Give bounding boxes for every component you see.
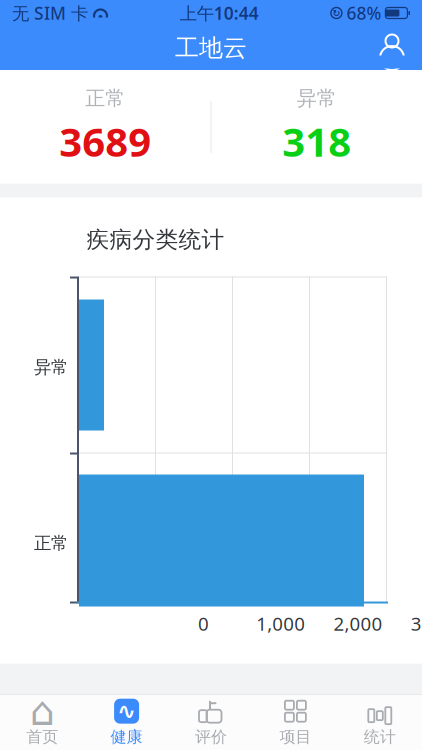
staticText: 318 — [282, 115, 351, 168]
button[interactable]: 个人中心 — [370, 26, 414, 70]
button[interactable]: ∿ — [84, 692, 169, 750]
staticText: ∿ — [117, 698, 136, 724]
staticText: 1,000 — [256, 611, 305, 636]
staticText: 评价 — [195, 727, 227, 747]
staticText: 上午10:44 — [180, 1, 259, 24]
staticText: 3,000 — [411, 611, 422, 636]
staticText: 68% — [346, 1, 381, 24]
staticText: 首页 — [26, 727, 58, 747]
staticText: 正常 — [34, 532, 68, 554]
staticText: 正常 — [85, 86, 125, 111]
button[interactable]: 统计 — [338, 692, 422, 750]
staticText: 3689 — [59, 115, 151, 168]
staticText: 工地云 — [175, 33, 247, 63]
staticText: 2,000 — [333, 611, 382, 636]
staticText: 疾病分类统计 — [86, 226, 224, 253]
staticText: 无 SIM 卡 — [12, 1, 88, 24]
staticText: ⌂ — [30, 688, 55, 734]
button[interactable]: 正常 — [0, 86, 210, 168]
button[interactable]: 异常 — [211, 86, 422, 168]
staticText: 异常 — [34, 356, 68, 378]
staticText: ↻ — [332, 8, 340, 18]
staticText: 健康 — [111, 727, 143, 747]
button[interactable]: 评价 — [169, 692, 253, 750]
staticText: 统计 — [364, 727, 396, 747]
button[interactable]: ⌂ — [0, 692, 84, 750]
staticText: 项目 — [279, 727, 311, 747]
staticText: 异常 — [297, 86, 337, 111]
button[interactable]: 项目 — [253, 692, 338, 750]
staticText: 0 — [198, 611, 209, 636]
